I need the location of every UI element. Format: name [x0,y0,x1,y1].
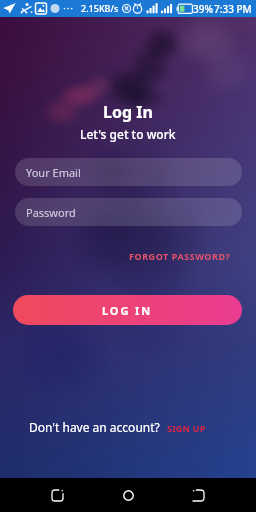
button[interactable]: Your Email [15,158,242,186]
staticText: 39% [193,2,213,16]
button[interactable]: Home [113,478,144,512]
button[interactable]: FORGOT PASSWORD? [128,249,232,263]
staticText: FORGOT PASSWORD? [129,250,231,262]
button[interactable]: SIGN UP [167,422,206,434]
staticText: SIGN UP [167,422,206,434]
staticText: Password [26,205,76,220]
button[interactable]: Back [183,478,214,512]
staticText: Don't have an account? [29,419,160,435]
staticText: 2.15KB/s [81,2,119,14]
staticText: 7:33 PM [214,2,252,16]
button[interactable]: LOG IN [13,295,242,325]
staticText: LOG IN [102,303,153,318]
button[interactable]: Password [15,198,242,226]
staticText: Your Email [26,165,81,180]
button[interactable]: Recent apps [42,478,73,512]
staticText: Let's get to work [80,126,176,142]
staticText: Log In [103,101,153,123]
